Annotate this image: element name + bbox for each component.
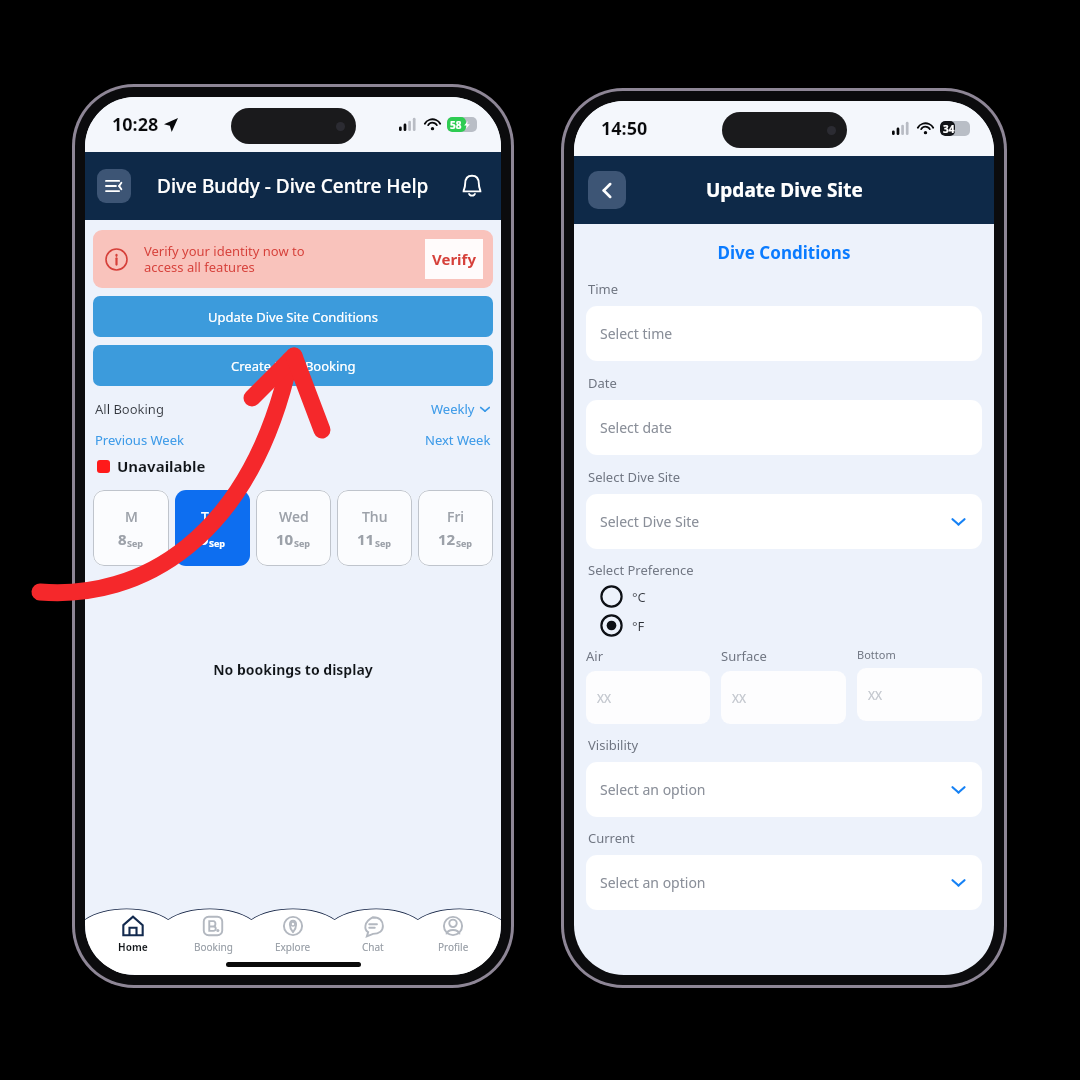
staticText: XX [868, 687, 883, 703]
staticText: Select Preference [588, 561, 694, 579]
button[interactable]: Verify [425, 239, 483, 279]
staticText: Dive Buddy - Dive Centre Help [157, 173, 429, 199]
button[interactable]: Previous Week [95, 431, 184, 449]
button[interactable]: Create New Booking [93, 345, 493, 386]
button[interactable]: Update Dive Site Conditions [93, 296, 493, 337]
staticText: 14:50 [601, 116, 648, 141]
staticText: Explore [275, 940, 311, 954]
staticText: M [125, 507, 138, 526]
button[interactable]: Verify your identity now to access all f… [93, 230, 493, 288]
button[interactable]: °C [600, 585, 646, 608]
staticText: XX [732, 690, 747, 706]
staticText: Thu [362, 507, 388, 526]
staticText: Sep [456, 537, 473, 549]
staticText: Home [118, 940, 148, 954]
staticText: 11 [357, 529, 375, 549]
staticText: Update Dive Site Conditions [208, 308, 378, 326]
staticText: Bottom [857, 647, 896, 662]
staticText: Verify your identity now to access all f… [144, 242, 324, 276]
staticText: Current [588, 829, 635, 847]
button[interactable]: XX [721, 671, 846, 724]
staticText: Verify [432, 249, 476, 269]
staticText: Chat [362, 940, 384, 954]
staticText: Visibility [588, 736, 639, 754]
staticText: 12 [438, 529, 456, 549]
staticText: Create New Booking [231, 357, 356, 375]
button[interactable]: Select an option [586, 855, 982, 910]
button[interactable]: Thu [337, 490, 412, 566]
button[interactable]: XX [586, 671, 710, 724]
staticText: 9 [200, 529, 209, 549]
staticText: Select time [600, 324, 673, 343]
button[interactable]: M [93, 490, 169, 566]
staticText: Select an option [600, 780, 706, 799]
button[interactable]: Wed [256, 490, 331, 566]
staticText: °F [632, 617, 645, 635]
staticText: All Booking [95, 400, 164, 418]
button[interactable]: Select time [586, 306, 982, 361]
button[interactable]: Home [101, 915, 165, 954]
staticText: Surface [721, 647, 767, 665]
staticText: Wed [279, 507, 309, 526]
button[interactable]: Profile [421, 915, 485, 954]
staticText: Sep [375, 537, 392, 549]
staticText: 10:28 [112, 112, 159, 137]
button[interactable]: Booking [181, 915, 245, 954]
staticText: Sep [209, 537, 226, 549]
staticText: °C [632, 588, 646, 606]
button[interactable]: Explore [261, 915, 325, 954]
staticText: Weekly [431, 400, 475, 418]
staticText: 34 [943, 122, 955, 136]
button[interactable]: Tue [175, 490, 250, 566]
staticText: Booking [194, 940, 233, 954]
staticText: 58 [450, 118, 462, 132]
button[interactable]: Menu [97, 169, 131, 203]
button[interactable]: Select an option [586, 762, 982, 817]
staticText: Select Dive Site [588, 468, 681, 486]
staticText: Unavailable [117, 456, 206, 476]
staticText: Sep [127, 537, 144, 549]
button[interactable]: Select date [586, 400, 982, 455]
staticText: No bookings to display [85, 660, 501, 679]
staticText: Tue [201, 507, 225, 526]
staticText: XX [597, 690, 612, 706]
button[interactable]: Back [588, 171, 626, 209]
staticText: Select date [600, 418, 672, 437]
button[interactable]: Fri [418, 490, 493, 566]
staticText: Profile [438, 940, 469, 954]
button[interactable]: Notifications [457, 171, 487, 201]
button[interactable]: Chat [341, 915, 405, 954]
button[interactable]: XX [857, 668, 982, 721]
button[interactable]: °F [600, 614, 645, 637]
staticText: Dive Conditions [574, 241, 994, 264]
staticText: Update Dive Site [706, 177, 863, 203]
staticText: Fri [447, 507, 465, 526]
staticText: Date [588, 374, 617, 392]
staticText: Air [586, 647, 604, 665]
staticText: 10 [276, 529, 294, 549]
button[interactable]: Weekly [431, 400, 491, 418]
staticText: Select an option [600, 873, 706, 892]
staticText: Select Dive Site [600, 512, 700, 531]
button[interactable]: Next Week [425, 431, 491, 449]
staticText: 8 [118, 529, 127, 549]
button[interactable]: Select Dive Site [586, 494, 982, 549]
staticText: Time [588, 280, 619, 298]
staticText: Sep [294, 537, 311, 549]
